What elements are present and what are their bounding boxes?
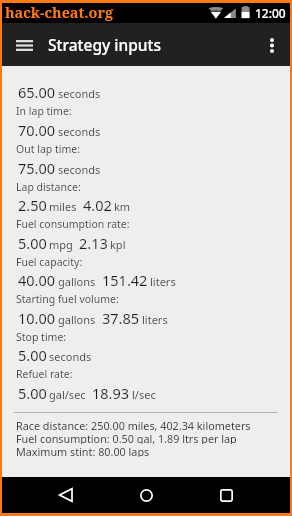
- staticText: 5.00: [18, 383, 47, 403]
- staticText: Race distance: 250.00 miles, 402.34 kilo…: [16, 418, 251, 431]
- staticText: 70.00: [18, 120, 56, 140]
- staticText: l/sec: [132, 387, 156, 402]
- button[interactable]: 40.00: [2, 270, 290, 290]
- staticText: hack-cheat.org: [5, 3, 113, 23]
- staticText: Strategy inputs: [48, 34, 161, 55]
- staticText: liters: [150, 274, 176, 289]
- button[interactable]: More options: [254, 27, 290, 63]
- button[interactable]: 5.00: [2, 345, 290, 365]
- staticText: seconds: [58, 162, 101, 177]
- button[interactable]: 70.00: [2, 120, 290, 140]
- button[interactable]: Recent apps: [208, 477, 244, 513]
- staticText: Lap distance:: [16, 180, 290, 194]
- staticText: Fuel consumption rate:: [16, 217, 290, 231]
- staticText: 18.93: [92, 383, 130, 403]
- button[interactable]: 2.50: [2, 195, 290, 215]
- staticText: mpg: [49, 237, 73, 252]
- staticText: Out lap time:: [16, 142, 290, 156]
- staticText: Refuel rate:: [16, 367, 290, 381]
- button[interactable]: 10.00: [2, 308, 290, 328]
- staticText: seconds: [58, 86, 101, 101]
- staticText: Maximum stint: 80.00 laps: [16, 444, 150, 457]
- staticText: km: [114, 199, 131, 214]
- staticText: gal/sec: [49, 387, 86, 402]
- button[interactable]: Home: [128, 477, 164, 513]
- staticText: 2.50: [18, 195, 47, 215]
- button[interactable]: Open navigation menu: [4, 25, 44, 65]
- staticText: In lap time:: [16, 104, 290, 118]
- button[interactable]: 5.00: [2, 233, 290, 253]
- staticText: 12:00: [255, 5, 286, 21]
- staticText: 40.00: [18, 270, 56, 290]
- staticText: Fuel consumption: 0.50 gal, 1.89 ltrs pe…: [16, 431, 237, 444]
- staticText: Fuel capacity:: [16, 255, 290, 269]
- staticText: Stop time:: [16, 330, 290, 344]
- button[interactable]: 65.00: [2, 82, 290, 102]
- staticText: 5.00: [18, 345, 47, 365]
- staticText: Starting fuel volume:: [16, 292, 290, 306]
- button[interactable]: 75.00: [2, 158, 290, 178]
- staticText: 75.00: [18, 158, 56, 178]
- button[interactable]: 5.00: [2, 383, 290, 403]
- staticText: seconds: [49, 349, 92, 364]
- staticText: 5.00: [18, 233, 47, 253]
- staticText: 65.00: [18, 82, 56, 102]
- staticText: 10.00: [18, 308, 56, 328]
- staticText: kpl: [110, 237, 126, 252]
- staticText: gallons: [58, 274, 96, 289]
- staticText: miles: [49, 199, 77, 214]
- staticText: 37.85: [102, 308, 140, 328]
- staticText: 4.02: [83, 195, 112, 215]
- staticText: gallons: [58, 312, 96, 327]
- staticText: 151.42: [102, 270, 148, 290]
- button[interactable]: Back: [48, 477, 84, 513]
- staticText: 2.13: [79, 233, 108, 253]
- staticText: liters: [142, 312, 168, 327]
- staticText: seconds: [58, 124, 101, 139]
